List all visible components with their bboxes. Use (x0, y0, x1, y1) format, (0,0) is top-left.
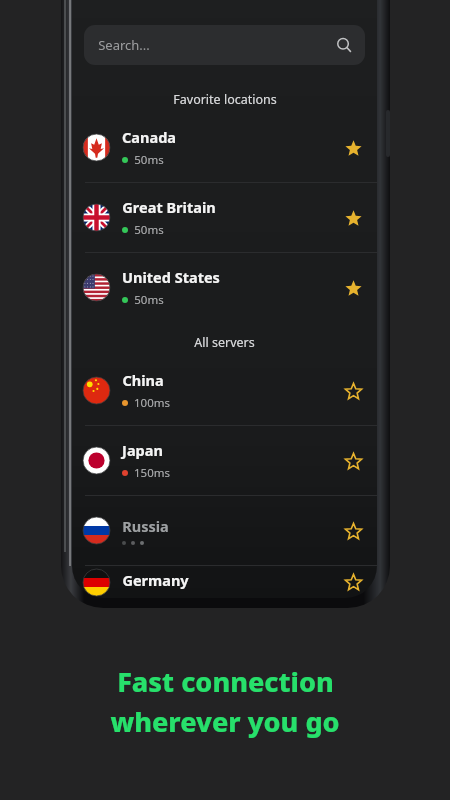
button[interactable]: Add to favorites (340, 518, 366, 544)
button[interactable]: Germany (72, 566, 377, 598)
button[interactable]: Remove from favorites (340, 135, 366, 161)
staticText: United States (122, 267, 220, 287)
button[interactable]: China (72, 356, 377, 425)
staticText: China (122, 370, 164, 390)
staticText: Search... (98, 36, 150, 54)
staticText: Great Britain (122, 197, 216, 217)
button[interactable]: Add to favorites (340, 569, 366, 595)
button[interactable]: Canada (72, 113, 377, 182)
button[interactable]: Add to favorites (340, 378, 366, 404)
button[interactable]: Remove from favorites (340, 275, 366, 301)
button[interactable]: Great Britain (72, 183, 377, 252)
staticText: 50ms (134, 222, 164, 238)
button[interactable]: Russia (72, 496, 377, 565)
staticText: wherever you go (110, 703, 340, 740)
staticText: Russia (122, 516, 169, 536)
staticText: Japan (122, 440, 163, 460)
staticText: 100ms (134, 395, 170, 411)
button[interactable]: Search... (84, 25, 365, 65)
staticText: Fast connection (117, 663, 334, 700)
staticText: Canada (122, 127, 176, 147)
staticText: 50ms (134, 292, 164, 308)
staticText: 50ms (134, 152, 164, 168)
staticText: All servers (194, 334, 255, 351)
other: Search (336, 37, 352, 53)
button[interactable]: Remove from favorites (340, 205, 366, 231)
staticText: Favorite locations (173, 91, 277, 108)
button[interactable]: United States (72, 253, 377, 322)
button[interactable]: Japan (72, 426, 377, 495)
staticText: Germany (122, 570, 189, 590)
staticText: 150ms (134, 465, 170, 481)
button[interactable]: Add to favorites (340, 448, 366, 474)
